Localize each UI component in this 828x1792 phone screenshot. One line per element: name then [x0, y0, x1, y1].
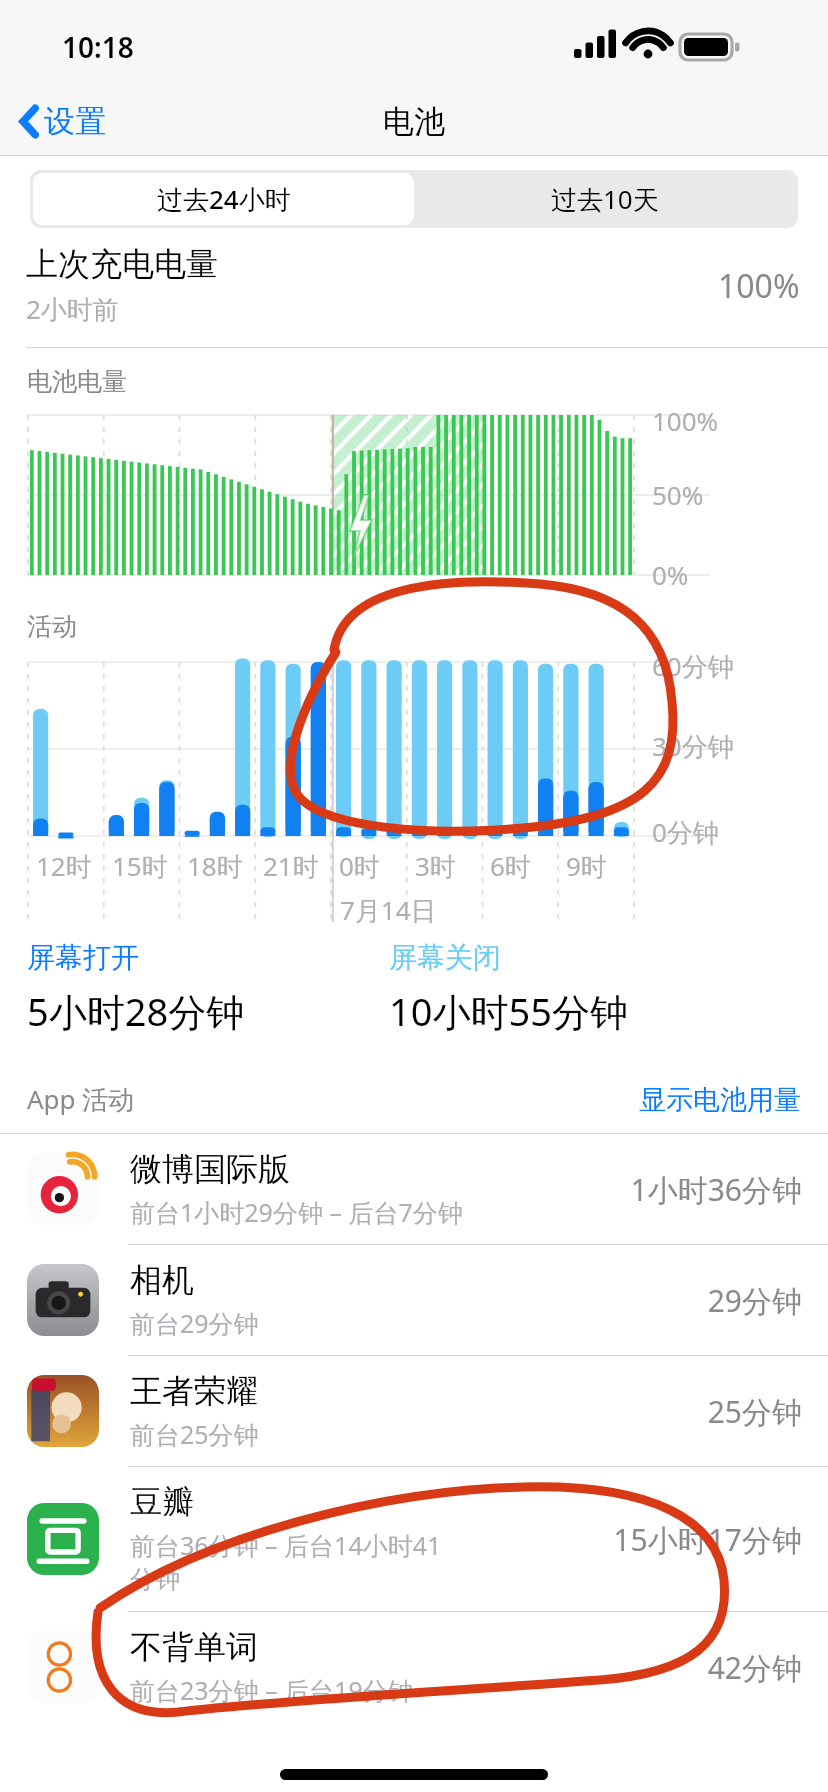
staticText: 屏幕打开 — [27, 940, 139, 975]
staticText: 6时 — [490, 848, 531, 884]
staticText: 不背单词 — [130, 1627, 258, 1667]
staticText: 电池 — [383, 102, 445, 141]
staticText: 前台1小时29分钟 – 后台7分钟 — [130, 1195, 463, 1229]
staticText: 9时 — [566, 848, 607, 884]
staticText: 10小时55分钟 — [389, 985, 628, 1037]
staticText: 微博国际版 — [130, 1149, 290, 1189]
staticText: 前台23分钟 – 后台19分钟 — [130, 1673, 413, 1707]
button[interactable]: 王者荣耀 — [0, 1356, 828, 1466]
staticText: 10:18 — [62, 28, 134, 66]
staticText: App 活动 — [27, 1081, 639, 1117]
staticText: 电池电量 — [27, 366, 127, 397]
staticText: 豆瓣 — [130, 1482, 194, 1522]
button[interactable]: 过去10天 — [414, 173, 795, 225]
staticText: 100% — [652, 403, 719, 438]
staticText: 0% — [652, 557, 689, 592]
staticText: 显示电池用量 — [639, 1083, 801, 1117]
staticText: 1小时36分钟 — [630, 1169, 802, 1210]
staticText: 21时 — [263, 848, 319, 884]
staticText: 12时 — [36, 848, 92, 884]
staticText: 上次充电电量 — [26, 244, 218, 284]
staticText: 前台36分钟 – 后台14小时41 分钟 — [130, 1528, 442, 1596]
staticText: 活动 — [27, 611, 77, 642]
button[interactable]: 显示电池用量 — [639, 1083, 801, 1117]
staticText: 15小时17分钟 — [613, 1519, 802, 1560]
button[interactable]: 豆瓣 — [0, 1467, 828, 1611]
staticText: 15时 — [112, 848, 168, 884]
staticText: 42分钟 — [707, 1647, 802, 1688]
staticText: 前台29分钟 — [130, 1306, 259, 1340]
staticText: 屏幕关闭 — [389, 940, 501, 975]
staticText: 29分钟 — [707, 1280, 802, 1321]
staticText: 2小时前 — [26, 291, 119, 327]
staticText: 0时 — [339, 848, 380, 884]
staticText: 过去24小时 — [157, 181, 291, 217]
staticText: 王者荣耀 — [130, 1371, 258, 1411]
staticText: 3时 — [415, 848, 456, 884]
staticText: 5小时28分钟 — [27, 985, 245, 1037]
button[interactable]: 不背单词 — [0, 1612, 828, 1722]
staticText: 7月14日 — [340, 892, 437, 928]
button[interactable]: 设置 — [0, 94, 120, 149]
button[interactable]: 上次充电电量 — [0, 244, 828, 347]
staticText: 设置 — [44, 102, 106, 141]
button[interactable]: 过去24小时 — [33, 173, 414, 225]
staticText: 前台25分钟 — [130, 1417, 259, 1451]
staticText: 过去10天 — [551, 181, 659, 217]
staticText: 25分钟 — [707, 1391, 802, 1432]
staticText: 0分钟 — [652, 814, 719, 850]
button[interactable]: 微博国际版 — [0, 1134, 828, 1244]
staticText: 30分钟 — [652, 728, 734, 764]
staticText: 50% — [652, 477, 704, 512]
staticText: 100% — [718, 264, 800, 308]
button[interactable]: 相机 — [0, 1245, 828, 1355]
staticText: 60分钟 — [652, 648, 734, 684]
staticText: 18时 — [187, 848, 243, 884]
staticText: 相机 — [130, 1260, 194, 1300]
